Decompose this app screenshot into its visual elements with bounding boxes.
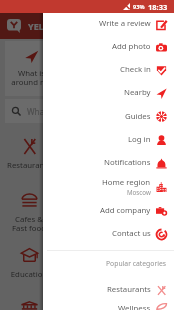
button[interactable]: Education [0, 238, 58, 292]
button[interactable]: Auto [58, 183, 116, 238]
button[interactable]: What is around me [5, 41, 169, 96]
staticText: Home region [102, 177, 151, 188]
staticText: Contact us [112, 228, 151, 239]
staticText: 93% [133, 3, 145, 11]
button[interactable]: What is around me [5, 41, 58, 96]
button[interactable]: Notifications [43, 151, 174, 174]
button[interactable]: Write a review [43, 12, 174, 35]
button[interactable]: Log in [43, 128, 174, 151]
button[interactable]: Services [116, 238, 174, 292]
staticText: Add company [100, 205, 151, 216]
staticText: Restaurants [0, 160, 58, 171]
staticText: Discounts [111, 68, 164, 79]
button[interactable]: Guides [43, 104, 174, 128]
button[interactable]: Entertainment [116, 129, 174, 183]
button[interactable]: Nearby [43, 81, 174, 104]
button[interactable]: Wellness [43, 303, 174, 310]
button[interactable]: Home region [43, 174, 174, 198]
button[interactable]: Contact us [43, 222, 174, 245]
staticText: Restaurants [107, 284, 151, 295]
button[interactable]: Restaurants [43, 276, 174, 303]
staticText: Cafes & Fast food [0, 214, 58, 233]
staticText: Write a review [99, 18, 151, 29]
staticText: Wellness [118, 303, 151, 310]
staticText: YELL [28, 20, 49, 32]
button[interactable]: Sport [116, 292, 174, 310]
button[interactable]: Cafes & Fast food [0, 183, 58, 238]
staticText: What are you looking for? [27, 106, 126, 117]
button[interactable]: Add photo [43, 35, 174, 58]
button[interactable]: Building [116, 183, 174, 238]
staticText: Moscow [127, 188, 151, 196]
staticText: 18:33 [148, 2, 168, 12]
staticText: Education [0, 269, 58, 280]
button[interactable]: Beauty [58, 129, 116, 183]
button[interactable]: What are you looking for? [5, 99, 169, 123]
button[interactable]: Medicine [58, 238, 116, 292]
staticText: What is around me [5, 68, 58, 88]
button[interactable]: Check in [43, 58, 174, 81]
staticText: Nearby [124, 87, 151, 98]
staticText: Add photo [112, 41, 151, 52]
staticText: Log in [128, 134, 151, 145]
button[interactable]: Add company [43, 198, 174, 222]
staticText: Beauty [58, 160, 116, 171]
button[interactable]: Restaurants [0, 129, 58, 183]
staticText: Entertainment [116, 160, 174, 171]
staticText: Notifications [104, 157, 151, 168]
staticText: Check in [120, 64, 151, 75]
staticText: Building [116, 214, 174, 225]
staticText: Guides [125, 111, 151, 122]
button[interactable]: Hotels [0, 292, 58, 310]
button[interactable]: Discounts [111, 41, 164, 96]
staticText: Popular categories [106, 259, 167, 268]
